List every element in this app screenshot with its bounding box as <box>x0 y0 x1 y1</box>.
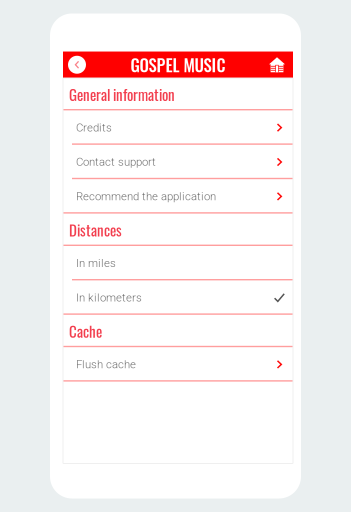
button[interactable]: Credits <box>63 110 293 145</box>
staticText: In miles <box>76 257 116 270</box>
staticText: Flush cache <box>76 358 136 371</box>
button[interactable]: In miles <box>63 246 293 280</box>
button[interactable]: In kilometers <box>63 280 293 315</box>
staticText: Recommend the application <box>76 190 216 203</box>
staticText: General information <box>69 83 175 105</box>
button[interactable]: Flush cache <box>63 347 293 382</box>
button[interactable]: Recommend the application <box>63 179 293 214</box>
button[interactable]: Back <box>66 51 88 78</box>
staticText: In kilometers <box>76 291 142 304</box>
staticText: Cache <box>69 320 102 342</box>
staticText: GOSPEL MUSIC <box>130 52 225 77</box>
staticText: Distances <box>69 219 122 241</box>
button[interactable]: Contact support <box>63 145 293 179</box>
staticText: Credits <box>76 121 112 134</box>
button[interactable]: Home <box>267 51 287 78</box>
staticText: Contact support <box>76 155 156 169</box>
